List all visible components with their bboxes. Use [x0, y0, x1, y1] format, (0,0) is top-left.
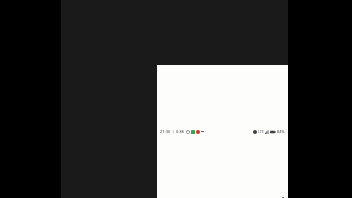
- staticText: 0.86: [176, 129, 184, 134]
- staticText: 84%: [277, 129, 285, 134]
- staticText: |: [172, 129, 175, 134]
- staticText: 21:36: [160, 129, 171, 134]
- staticText: LTE: [258, 129, 264, 134]
